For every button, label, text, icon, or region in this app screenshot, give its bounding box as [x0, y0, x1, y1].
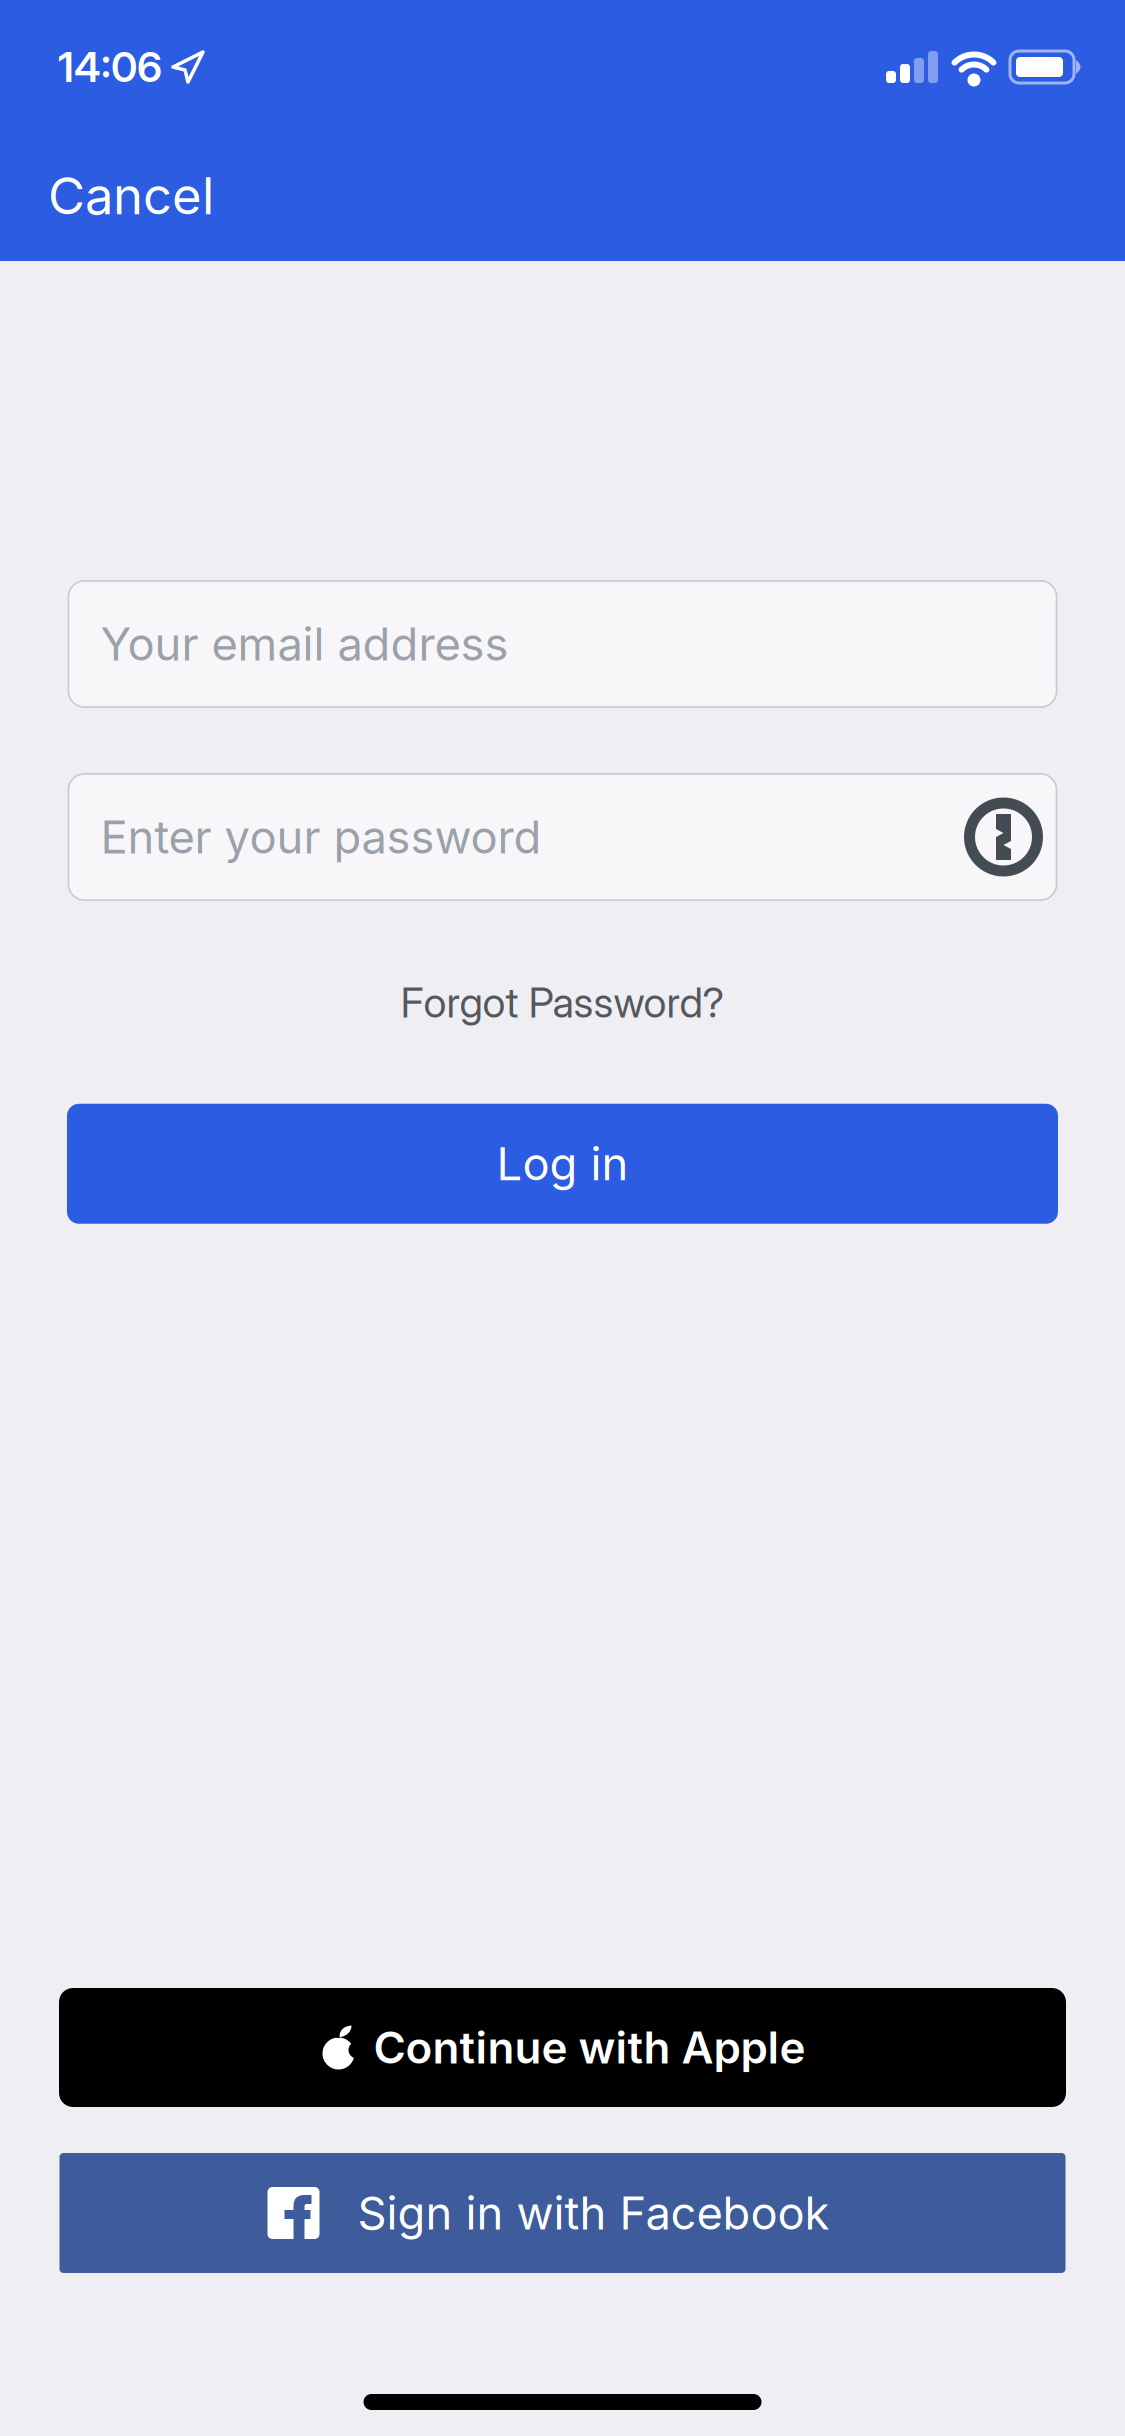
staticText: Sign in with Facebook — [357, 2186, 829, 2240]
staticText: Enter your password — [100, 810, 541, 864]
staticText: Log in — [496, 1137, 628, 1190]
staticText: Your email address — [100, 617, 508, 671]
staticText: Cancel — [48, 166, 214, 226]
staticText: 14:06 — [58, 43, 162, 91]
staticText: Continue with Apple — [373, 2021, 805, 2073]
staticText: Forgot Password? — [400, 978, 724, 1027]
